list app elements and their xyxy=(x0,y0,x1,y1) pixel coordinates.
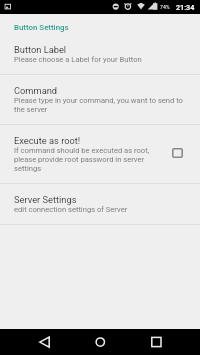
staticText: 74% xyxy=(160,4,170,10)
button[interactable]: Command xyxy=(0,75,200,124)
staticText: Server Settings xyxy=(14,195,77,205)
button[interactable]: Home xyxy=(87,332,114,352)
staticText: Button Settings xyxy=(14,23,69,32)
staticText: 21:34 xyxy=(176,3,195,11)
button[interactable]: Execute as root xyxy=(165,140,189,166)
staticText: Button Label xyxy=(14,45,67,55)
button[interactable]: Execute as root! xyxy=(0,125,200,183)
button[interactable]: Recent apps xyxy=(142,332,169,352)
staticText: Please type in your command, you want to… xyxy=(14,96,190,114)
staticText: Command xyxy=(14,86,58,96)
button[interactable]: Server Settings xyxy=(0,184,200,224)
staticText: edit connection settings of Server xyxy=(14,205,128,214)
staticText: If command should be executed as root, p… xyxy=(14,146,162,173)
staticText: Execute as root! xyxy=(14,136,81,146)
button[interactable]: Back xyxy=(31,332,58,352)
staticText: Please choose a Label for your Button xyxy=(14,55,142,64)
button[interactable]: Button Label xyxy=(0,34,200,74)
